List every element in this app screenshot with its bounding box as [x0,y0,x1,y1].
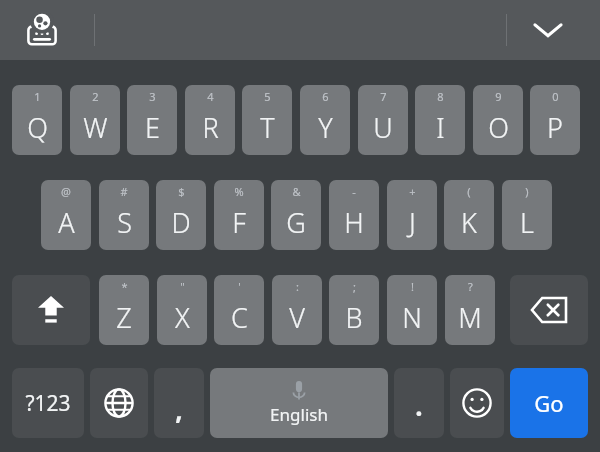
staticText: : [296,279,299,294]
button[interactable]: . [394,368,444,438]
button[interactable]: Shift [12,275,90,345]
staticText: V [289,299,305,336]
button[interactable]: English [210,368,388,438]
button[interactable]: Expand suggestions [524,10,572,50]
staticText: . [415,388,423,423]
staticText: F [232,204,246,241]
button[interactable]: Backspace [510,275,588,345]
button[interactable]: $ [156,180,206,250]
staticText: K [461,204,477,241]
staticText: 3 [149,89,156,104]
button[interactable]: ?123 [12,368,84,438]
staticText: * [121,279,128,294]
staticText: ( [467,184,471,199]
staticText: I [436,109,445,146]
button[interactable]: & [271,180,321,250]
button[interactable]: + [387,180,437,250]
staticText: 1 [34,89,41,104]
staticText: T [260,109,275,146]
button[interactable]: 7 [358,85,408,155]
staticText: 7 [380,89,387,104]
staticText: L [520,204,534,241]
button[interactable]: 2 [70,85,120,155]
button[interactable]: @ [41,180,91,250]
staticText: % [234,184,244,199]
staticText: @ [61,184,71,199]
staticText: H [344,204,364,241]
staticText: 5 [264,89,271,104]
staticText: 6 [322,89,329,104]
button[interactable]: 3 [127,85,177,155]
staticText: ' [238,279,241,294]
staticText: X [175,299,190,336]
button[interactable]: 4 [185,85,235,155]
staticText: A [58,204,75,241]
staticText: S [117,204,132,241]
staticText: O [488,109,509,146]
staticText: ) [525,184,529,199]
button[interactable]: * [99,275,149,345]
staticText: M [458,299,482,336]
staticText: D [171,204,191,241]
staticText: 9 [495,89,502,104]
staticText: J [409,204,416,241]
staticText: & [292,184,301,199]
staticText: Go [534,388,564,418]
button[interactable]: ; [329,275,379,345]
button[interactable]: , [154,368,204,438]
staticText: $ [178,184,185,199]
staticText: ; [353,279,356,294]
button[interactable]: ( [444,180,494,250]
button[interactable]: ' [214,275,264,345]
staticText: ! [411,279,414,294]
staticText: N [402,299,422,336]
staticText: C [231,299,248,336]
button[interactable]: 5 [242,85,292,155]
button[interactable]: - [329,180,379,250]
button[interactable]: # [99,180,149,250]
staticText: Y [318,109,333,146]
staticText: 8 [437,89,444,104]
staticText: # [120,184,128,199]
staticText: R [202,109,219,146]
staticText: English [270,403,328,426]
button[interactable]: Go [510,368,588,438]
button[interactable]: ! [387,275,437,345]
staticText: U [373,109,393,146]
staticText: W [83,109,108,146]
staticText: G [286,204,306,241]
staticText: " [180,279,185,294]
button[interactable]: Switch language [90,368,148,438]
staticText: ? [468,279,473,294]
staticText: 4 [207,89,214,104]
staticText: Q [27,109,48,146]
staticText: 2 [92,89,99,104]
button[interactable]: ) [502,180,552,250]
staticText: - [352,184,356,199]
button[interactable]: " [157,275,207,345]
staticText: + [409,184,416,199]
staticText: E [145,109,160,146]
staticText: B [345,299,363,336]
button[interactable]: Emoji [450,368,504,438]
staticText: , [175,392,183,427]
button[interactable]: ? [445,275,495,345]
staticText: 0 [552,89,559,104]
staticText: P [547,109,563,146]
button[interactable]: 8 [415,85,465,155]
button[interactable]: 9 [473,85,523,155]
button[interactable]: Change keyboard language [20,10,64,50]
button[interactable]: : [272,275,322,345]
button[interactable]: 0 [530,85,580,155]
button[interactable]: 6 [300,85,350,155]
staticText: ?123 [25,389,71,418]
button[interactable]: % [214,180,264,250]
button[interactable]: 1 [12,85,62,155]
staticText: Z [116,299,132,336]
